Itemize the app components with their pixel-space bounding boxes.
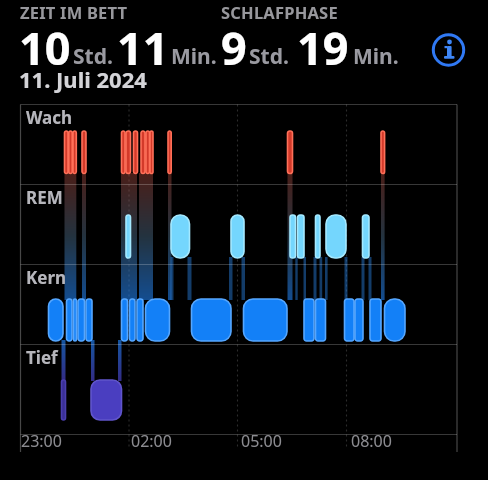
- staticText: 02:00: [131, 430, 172, 452]
- staticText: Kern: [26, 266, 67, 289]
- staticText: Tief: [26, 346, 58, 369]
- staticText: Std.: [73, 42, 113, 71]
- staticText: 23:00: [21, 430, 62, 452]
- staticText: 08:00: [351, 430, 392, 452]
- staticText: 05:00: [241, 430, 282, 452]
- button[interactable]: [430, 31, 468, 69]
- staticText: 19: [297, 17, 349, 78]
- staticText: 9: [221, 17, 247, 78]
- staticText: Std.: [249, 42, 289, 71]
- staticText: SCHLAFPHASE: [221, 1, 338, 23]
- staticText: REM: [26, 186, 63, 209]
- staticText: Min.: [353, 42, 399, 71]
- staticText: 11: [117, 17, 169, 78]
- staticText: Wach: [26, 106, 73, 129]
- staticText: 11. Juli 2024: [19, 64, 147, 94]
- staticText: 10: [19, 17, 71, 78]
- staticText: Min.: [171, 42, 217, 71]
- staticText: ZEIT IM BETT: [20, 1, 128, 23]
